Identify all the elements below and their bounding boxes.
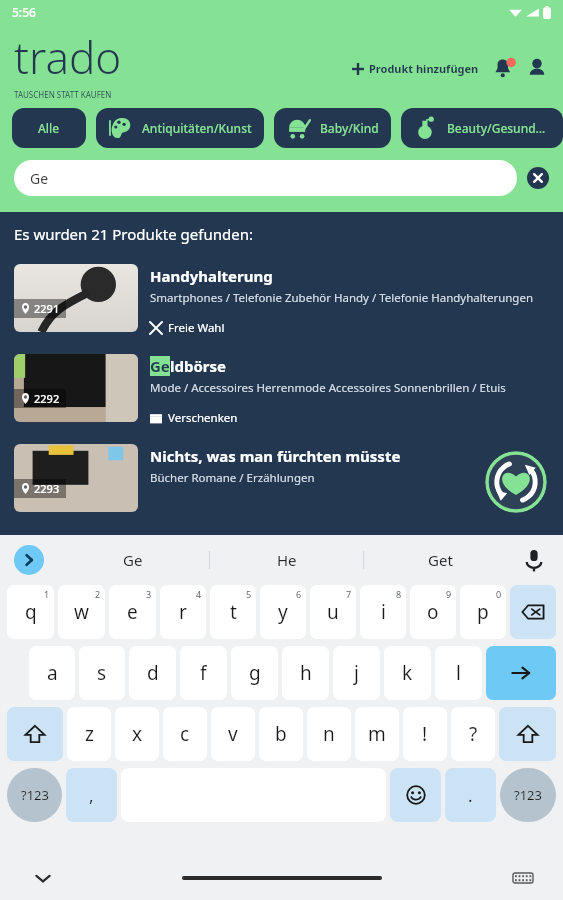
button[interactable]: Profil xyxy=(523,54,551,82)
button[interactable]: Produkt hinzufügen xyxy=(348,57,483,80)
button[interactable]: Ge xyxy=(56,535,209,585)
button[interactable]: Tauschen xyxy=(485,451,547,513)
staticText: 3 xyxy=(146,588,152,600)
button[interactable]: , xyxy=(66,768,117,822)
staticText: . xyxy=(468,784,473,807)
button[interactable]: l xyxy=(435,646,482,700)
staticText: , xyxy=(89,784,94,807)
button[interactable]: x xyxy=(115,707,159,761)
staticText: g xyxy=(249,660,261,686)
button[interactable]: 2291 xyxy=(0,264,563,336)
button[interactable]: v xyxy=(211,707,255,761)
staticText: Ge xyxy=(30,169,49,188)
button[interactable]: Baby/Kind xyxy=(274,108,391,148)
button[interactable]: q xyxy=(7,585,54,639)
staticText: 5 xyxy=(246,588,252,600)
button[interactable]: e xyxy=(109,585,156,639)
staticText: trado xyxy=(14,27,122,87)
staticText: Baby/Kind xyxy=(320,120,379,136)
button[interactable]: g xyxy=(231,646,278,700)
button[interactable]: i xyxy=(360,585,406,639)
button[interactable]: Get xyxy=(364,535,517,585)
button[interactable]: ?123 xyxy=(7,768,62,822)
staticText: Freie Wahl xyxy=(168,320,225,336)
button[interactable]: Tastatur schließen xyxy=(32,867,54,889)
button[interactable]: j xyxy=(333,646,380,700)
button[interactable]: Beauty/Gesundheit/W xyxy=(401,108,563,148)
button[interactable]: Umschalt xyxy=(7,707,63,761)
staticText: n xyxy=(323,721,335,747)
button[interactable]: o xyxy=(410,585,456,639)
button[interactable]: ! xyxy=(403,707,447,761)
staticText: 6 xyxy=(296,588,302,600)
staticText: 1 xyxy=(44,588,50,600)
button[interactable]: c xyxy=(163,707,207,761)
staticText: TAUSCHEN STATT KAUFEN xyxy=(14,89,112,100)
button[interactable]: d xyxy=(129,646,176,700)
button[interactable]: t xyxy=(210,585,256,639)
staticText: 0 xyxy=(496,588,502,600)
staticText: Nichts, was man fürchten müsste xyxy=(150,446,401,466)
staticText: k xyxy=(402,660,413,686)
staticText: l xyxy=(456,660,461,686)
staticText: t xyxy=(230,599,237,625)
button[interactable]: z xyxy=(67,707,111,761)
staticText: s xyxy=(97,660,107,686)
staticText: o xyxy=(427,599,439,625)
button[interactable]: He xyxy=(210,535,363,585)
staticText: Alle xyxy=(38,120,60,136)
staticText: c xyxy=(180,721,190,747)
staticText: Es wurden 21 Produkte gefunden: xyxy=(14,224,253,244)
staticText: 8 xyxy=(396,588,402,600)
staticText: 7 xyxy=(346,588,352,600)
button[interactable]: Benachrichtigungen xyxy=(491,54,519,82)
button[interactable]: s xyxy=(79,646,125,700)
button[interactable]: Umschalt xyxy=(499,707,556,761)
button[interactable]: . xyxy=(445,768,496,822)
button[interactable]: Spracheingabe xyxy=(521,547,547,573)
button[interactable]: r xyxy=(160,585,206,639)
staticText: ? xyxy=(469,721,478,747)
button[interactable]: p xyxy=(460,585,506,639)
button[interactable]: n xyxy=(307,707,351,761)
button[interactable]: k xyxy=(384,646,431,700)
staticText: Get xyxy=(428,550,453,570)
button[interactable]: Löschen xyxy=(510,585,556,639)
button[interactable]: u xyxy=(310,585,356,639)
button[interactable]: ?123 xyxy=(500,768,556,822)
staticText: Produkt hinzufügen xyxy=(369,61,479,76)
button[interactable]: Antiquitäten/Kunst xyxy=(96,108,264,148)
staticText: a xyxy=(47,660,58,686)
staticText: 2292 xyxy=(34,391,60,406)
staticText: f xyxy=(200,660,207,686)
button[interactable]: 2293 xyxy=(0,444,563,512)
staticText: y xyxy=(278,599,288,625)
button[interactable]: Alle xyxy=(12,108,86,148)
button[interactable]: b xyxy=(259,707,303,761)
staticText: h xyxy=(300,660,312,686)
staticText: u xyxy=(327,599,339,625)
staticText: b xyxy=(275,721,287,747)
button[interactable]: f xyxy=(180,646,227,700)
button[interactable]: Emoji xyxy=(390,768,441,822)
button[interactable]: Tastatur wechseln xyxy=(513,868,533,888)
button[interactable]: m xyxy=(355,707,399,761)
staticText: m xyxy=(368,721,386,747)
button[interactable]: Mehr xyxy=(14,545,44,575)
button[interactable]: ? xyxy=(451,707,495,761)
staticText: Handyhalterung xyxy=(150,266,273,286)
button[interactable]: 2292 xyxy=(0,354,563,426)
staticText: p xyxy=(477,599,489,625)
button[interactable]: y xyxy=(260,585,306,639)
button[interactable]: w xyxy=(58,585,105,639)
button[interactable]: Eingabe xyxy=(486,646,556,700)
button[interactable]: Ge xyxy=(14,160,517,196)
staticText: Verschenken xyxy=(168,410,238,426)
button[interactable]: a xyxy=(29,646,75,700)
staticText: w xyxy=(74,599,89,625)
button[interactable]: h xyxy=(282,646,329,700)
staticText: x xyxy=(132,721,143,747)
staticText: e xyxy=(127,599,138,625)
button[interactable]: Suche löschen xyxy=(527,167,549,189)
